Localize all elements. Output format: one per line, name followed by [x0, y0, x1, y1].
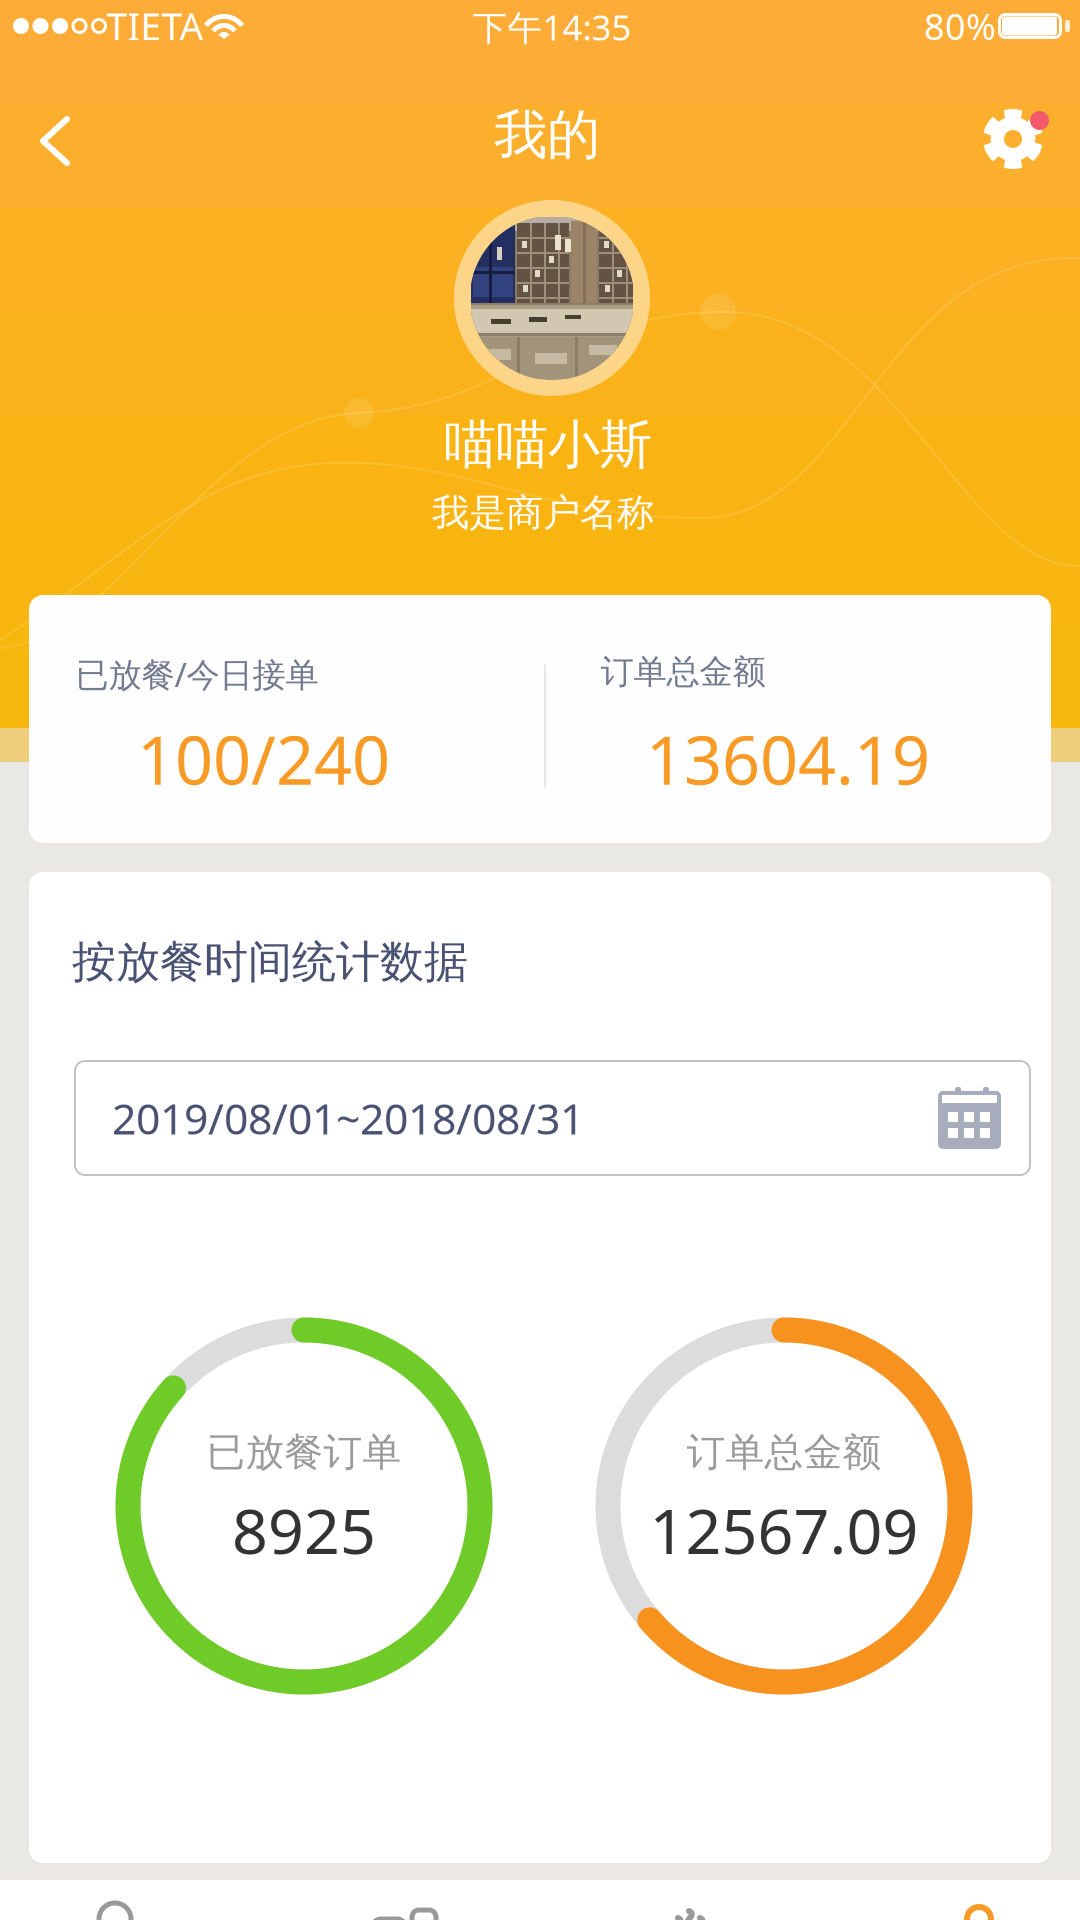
- staticText: 80%: [924, 2, 996, 50]
- button[interactable]: Mine: [879, 1880, 1079, 1920]
- staticText: 100/240: [137, 715, 390, 803]
- staticText: 我是商户名称: [432, 490, 654, 536]
- staticText: 订单总金额: [686, 1429, 881, 1476]
- button[interactable]: Statistics: [591, 1880, 791, 1920]
- staticText: 12567.09: [649, 1488, 918, 1571]
- staticText: 已放餐/今日接单: [75, 652, 318, 696]
- staticText: 13604.19: [646, 715, 930, 803]
- staticText: 8925: [232, 1488, 376, 1571]
- button[interactable]: Messages: [303, 1880, 503, 1920]
- staticText: 订单总金额: [600, 651, 765, 692]
- button[interactable]: Settings: [966, 62, 1070, 166]
- staticText: 2019/08/01~2018/08/31: [112, 1090, 584, 1146]
- button[interactable]: Date range: [75, 1061, 1030, 1175]
- button[interactable]: Back: [10, 62, 114, 166]
- staticText: 我的: [494, 102, 600, 168]
- staticText: TIETA: [106, 1, 203, 51]
- staticText: 按放餐时间统计数据: [72, 935, 468, 989]
- button[interactable]: Orders: [15, 1880, 215, 1920]
- staticText: 已放餐订单: [206, 1429, 401, 1476]
- staticText: 下午14:35: [472, 4, 631, 50]
- staticText: 喵喵小斯: [444, 413, 652, 477]
